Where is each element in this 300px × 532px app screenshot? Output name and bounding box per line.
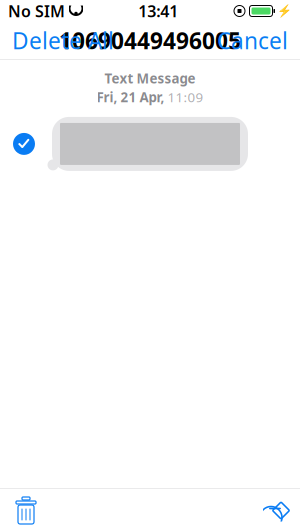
staticText: Delete All bbox=[12, 25, 114, 55]
staticText: Text Message bbox=[104, 69, 195, 87]
staticText: 13:41 bbox=[138, 0, 178, 22]
staticText: Fri, 21 Apr, bbox=[96, 88, 164, 106]
staticText: No SIM bbox=[8, 0, 65, 22]
staticText: 11:09 bbox=[167, 88, 203, 106]
button[interactable]: Delete All bbox=[12, 23, 114, 57]
button[interactable]: Delete bbox=[4, 489, 48, 531]
button[interactable]: Selected bbox=[13, 133, 35, 155]
staticText: 10690449496005 bbox=[59, 25, 241, 55]
button[interactable]: Forward bbox=[252, 489, 296, 531]
staticText: ⚡ bbox=[277, 4, 292, 18]
staticText: Cancel bbox=[217, 25, 288, 55]
button[interactable]: Cancel bbox=[217, 23, 288, 57]
